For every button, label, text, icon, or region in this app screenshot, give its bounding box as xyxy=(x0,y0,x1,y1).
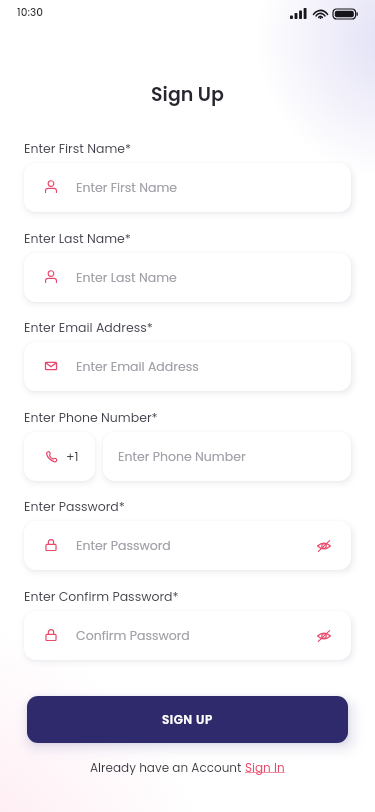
staticText: Enter Last Name* xyxy=(24,230,131,247)
staticText: Sign Up xyxy=(0,81,375,108)
staticText: SIGN UP xyxy=(162,711,213,728)
staticText: Enter Phone Number* xyxy=(24,409,158,426)
staticText: Already have an Account xyxy=(90,759,245,776)
staticText: Enter Password xyxy=(76,537,171,554)
staticText: Enter Password* xyxy=(24,498,125,515)
button[interactable]: SIGN UP xyxy=(27,696,348,743)
button[interactable]: Sign In xyxy=(245,759,285,776)
staticText: Enter First Name* xyxy=(24,140,132,157)
button[interactable]: Enter Phone Number xyxy=(103,432,351,481)
button[interactable]: Confirm Password xyxy=(24,611,351,660)
button[interactable]: Enter Last Name xyxy=(24,253,351,302)
staticText: Enter Confirm Password* xyxy=(24,588,179,605)
staticText: 10:30 xyxy=(17,5,43,20)
staticText: +1 xyxy=(66,448,79,465)
staticText: Enter Last Name xyxy=(76,269,177,286)
staticText: Enter First Name xyxy=(76,179,178,196)
staticText: Enter Email Address* xyxy=(24,319,153,336)
staticText: Enter Email Address xyxy=(76,358,199,375)
button[interactable]: Enter Email Address xyxy=(24,342,351,391)
button[interactable]: Enter Password xyxy=(24,521,351,570)
staticText: Sign In xyxy=(245,759,285,776)
button[interactable]: +1 xyxy=(24,432,95,481)
button[interactable]: Toggle password visibility xyxy=(304,616,344,656)
staticText: Confirm Password xyxy=(76,627,190,644)
button[interactable]: Toggle password visibility xyxy=(304,526,344,566)
button[interactable]: Enter First Name xyxy=(24,163,351,212)
staticText: Enter Phone Number xyxy=(118,448,246,465)
